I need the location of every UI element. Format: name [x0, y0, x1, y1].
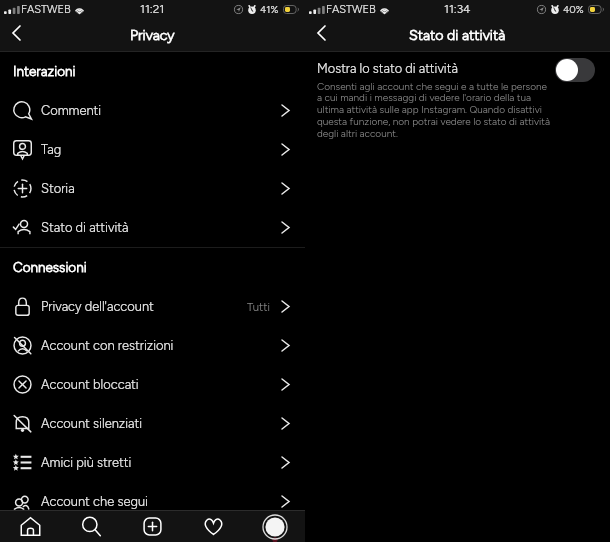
button[interactable]: Create [122, 511, 183, 542]
button[interactable]: Search [61, 511, 122, 542]
button[interactable]: Back [305, 18, 337, 47]
button[interactable]: Stato di attività [0, 208, 305, 247]
staticText: Mostra lo stato di attività [317, 61, 458, 76]
button[interactable]: Account che segui [0, 482, 305, 521]
staticText: Account bloccati [41, 377, 139, 392]
button[interactable]: Home [0, 511, 61, 542]
staticText: Stato di attività [409, 27, 506, 44]
staticText: 11:34 [444, 2, 471, 16]
button[interactable]: Account silenziati [0, 404, 305, 443]
staticText: 40% [563, 3, 584, 15]
button[interactable]: Storia [0, 169, 305, 208]
staticText: Commenti [41, 103, 102, 118]
button[interactable]: Privacy dell'account [0, 287, 305, 326]
button[interactable]: Tag [0, 130, 305, 169]
staticText: Consenti agli account che segui e a tutt… [317, 80, 551, 140]
staticText: Connessioni [13, 259, 87, 275]
button[interactable]: Back [0, 18, 32, 47]
staticText: Stato di attività [41, 220, 129, 235]
staticText: Tutti [247, 300, 270, 314]
staticText: Amici più stretti [41, 455, 132, 470]
staticText: FASTWEB [21, 3, 71, 16]
staticText: Storia [41, 181, 75, 196]
staticText: Account silenziati [41, 416, 143, 431]
staticText: Tag [41, 142, 62, 157]
button[interactable]: Activity [183, 511, 244, 542]
button[interactable]: Account bloccati [0, 365, 305, 404]
staticText: Account che segui [41, 494, 148, 509]
button[interactable]: Account con restrizioni [0, 326, 305, 365]
staticText: FASTWEB [326, 3, 376, 16]
button[interactable]: Mostra lo stato di attività [555, 58, 595, 82]
button[interactable]: Profile [244, 511, 305, 542]
staticText: 41% [260, 3, 279, 15]
button[interactable]: Amici più stretti [0, 443, 305, 482]
staticText: Interazioni [13, 63, 76, 79]
staticText: Account con restrizioni [41, 338, 174, 353]
staticText: 11:21 [140, 2, 165, 16]
staticText: Privacy dell'account [41, 299, 154, 314]
staticText: Privacy [130, 27, 175, 44]
button[interactable]: Commenti [0, 91, 305, 130]
